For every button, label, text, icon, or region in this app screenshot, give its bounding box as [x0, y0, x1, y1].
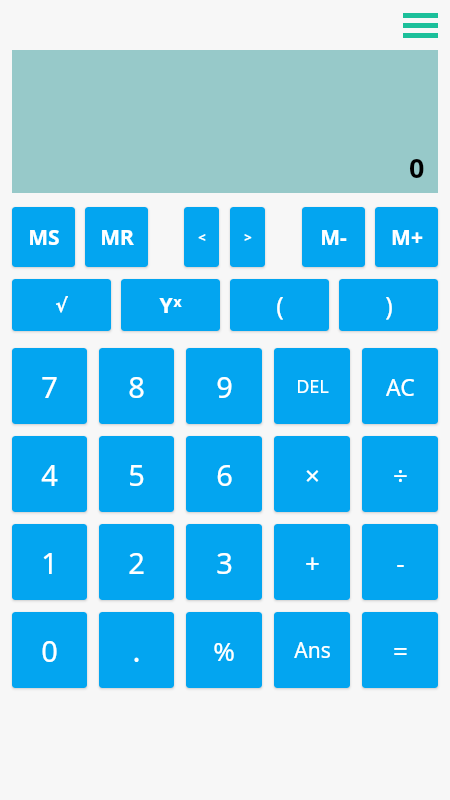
staticText: (	[276, 288, 284, 322]
button[interactable]: =	[362, 612, 438, 688]
staticText: +	[305, 545, 320, 580]
button[interactable]: -	[362, 524, 438, 600]
button[interactable]: %	[186, 612, 262, 688]
button[interactable]: 0	[12, 612, 87, 688]
button[interactable]: 9	[186, 348, 262, 424]
staticText: <	[198, 228, 206, 246]
staticText: Ans	[294, 636, 331, 665]
button[interactable]: 8	[99, 348, 174, 424]
button[interactable]: DEL	[274, 348, 350, 424]
button[interactable]: Y	[121, 279, 220, 331]
button[interactable]: Ans	[274, 612, 350, 688]
button[interactable]: M-	[302, 207, 365, 267]
button[interactable]: 2	[99, 524, 174, 600]
staticText: %	[213, 633, 235, 668]
button[interactable]: MR	[85, 207, 148, 267]
staticText: AC	[386, 371, 415, 402]
staticText: -	[396, 545, 405, 580]
button[interactable]: MS	[12, 207, 75, 267]
staticText: =	[393, 633, 408, 668]
staticText: 1	[41, 543, 58, 582]
button[interactable]: ×	[274, 436, 350, 512]
staticText: √	[55, 294, 68, 316]
staticText: 5	[128, 455, 145, 494]
staticText: MR	[100, 223, 134, 252]
staticText: MS	[28, 223, 60, 252]
staticText: M+	[391, 223, 423, 252]
staticText: Y	[159, 291, 173, 320]
button[interactable]: +	[274, 524, 350, 600]
staticText: 3	[216, 543, 233, 582]
button[interactable]: )	[339, 279, 438, 331]
button[interactable]: 4	[12, 436, 87, 512]
button[interactable]: √	[12, 279, 111, 331]
staticText: 6	[216, 455, 233, 494]
staticText: ÷	[393, 457, 408, 492]
button[interactable]: 6	[186, 436, 262, 512]
staticText: 2	[128, 543, 145, 582]
staticText: x	[173, 292, 182, 311]
button[interactable]: AC	[362, 348, 438, 424]
staticText: .	[132, 630, 141, 671]
staticText: 8	[128, 367, 145, 406]
staticText: M-	[320, 223, 347, 252]
staticText: )	[385, 288, 393, 322]
staticText: >	[244, 228, 252, 246]
staticText: DEL	[296, 374, 329, 399]
staticText: ×	[305, 457, 320, 492]
staticText: 7	[41, 367, 58, 406]
button[interactable]: M+	[375, 207, 438, 267]
button[interactable]: 5	[99, 436, 174, 512]
button[interactable]: 3	[186, 524, 262, 600]
button[interactable]: <	[184, 207, 219, 267]
button[interactable]: >	[230, 207, 265, 267]
button[interactable]: 7	[12, 348, 87, 424]
button[interactable]: Menu	[397, 2, 443, 48]
button[interactable]: ÷	[362, 436, 438, 512]
button[interactable]: .	[99, 612, 174, 688]
button[interactable]: (	[230, 279, 329, 331]
staticText: 4	[41, 455, 58, 494]
staticText: 9	[216, 367, 233, 406]
staticText: 0	[409, 149, 425, 186]
button[interactable]: 1	[12, 524, 87, 600]
staticText: 0	[41, 631, 58, 670]
